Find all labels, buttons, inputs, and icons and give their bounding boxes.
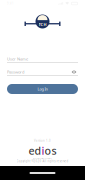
staticText: Log In (37, 86, 47, 92)
staticText: Innovative Software Solutions (33, 158, 52, 159)
button[interactable]: Log In (7, 84, 78, 94)
staticText: Password (7, 69, 24, 75)
staticText: i (41, 143, 44, 158)
button[interactable]: Show password (70, 69, 78, 75)
staticText: Copyright ©2020 All rights reserved (16, 159, 68, 163)
staticText: TCH (38, 22, 46, 27)
staticText: User Name (7, 56, 28, 62)
staticText: Version 1.0 (34, 139, 51, 142)
staticText: ed (28, 143, 41, 158)
staticText: os (44, 143, 56, 158)
